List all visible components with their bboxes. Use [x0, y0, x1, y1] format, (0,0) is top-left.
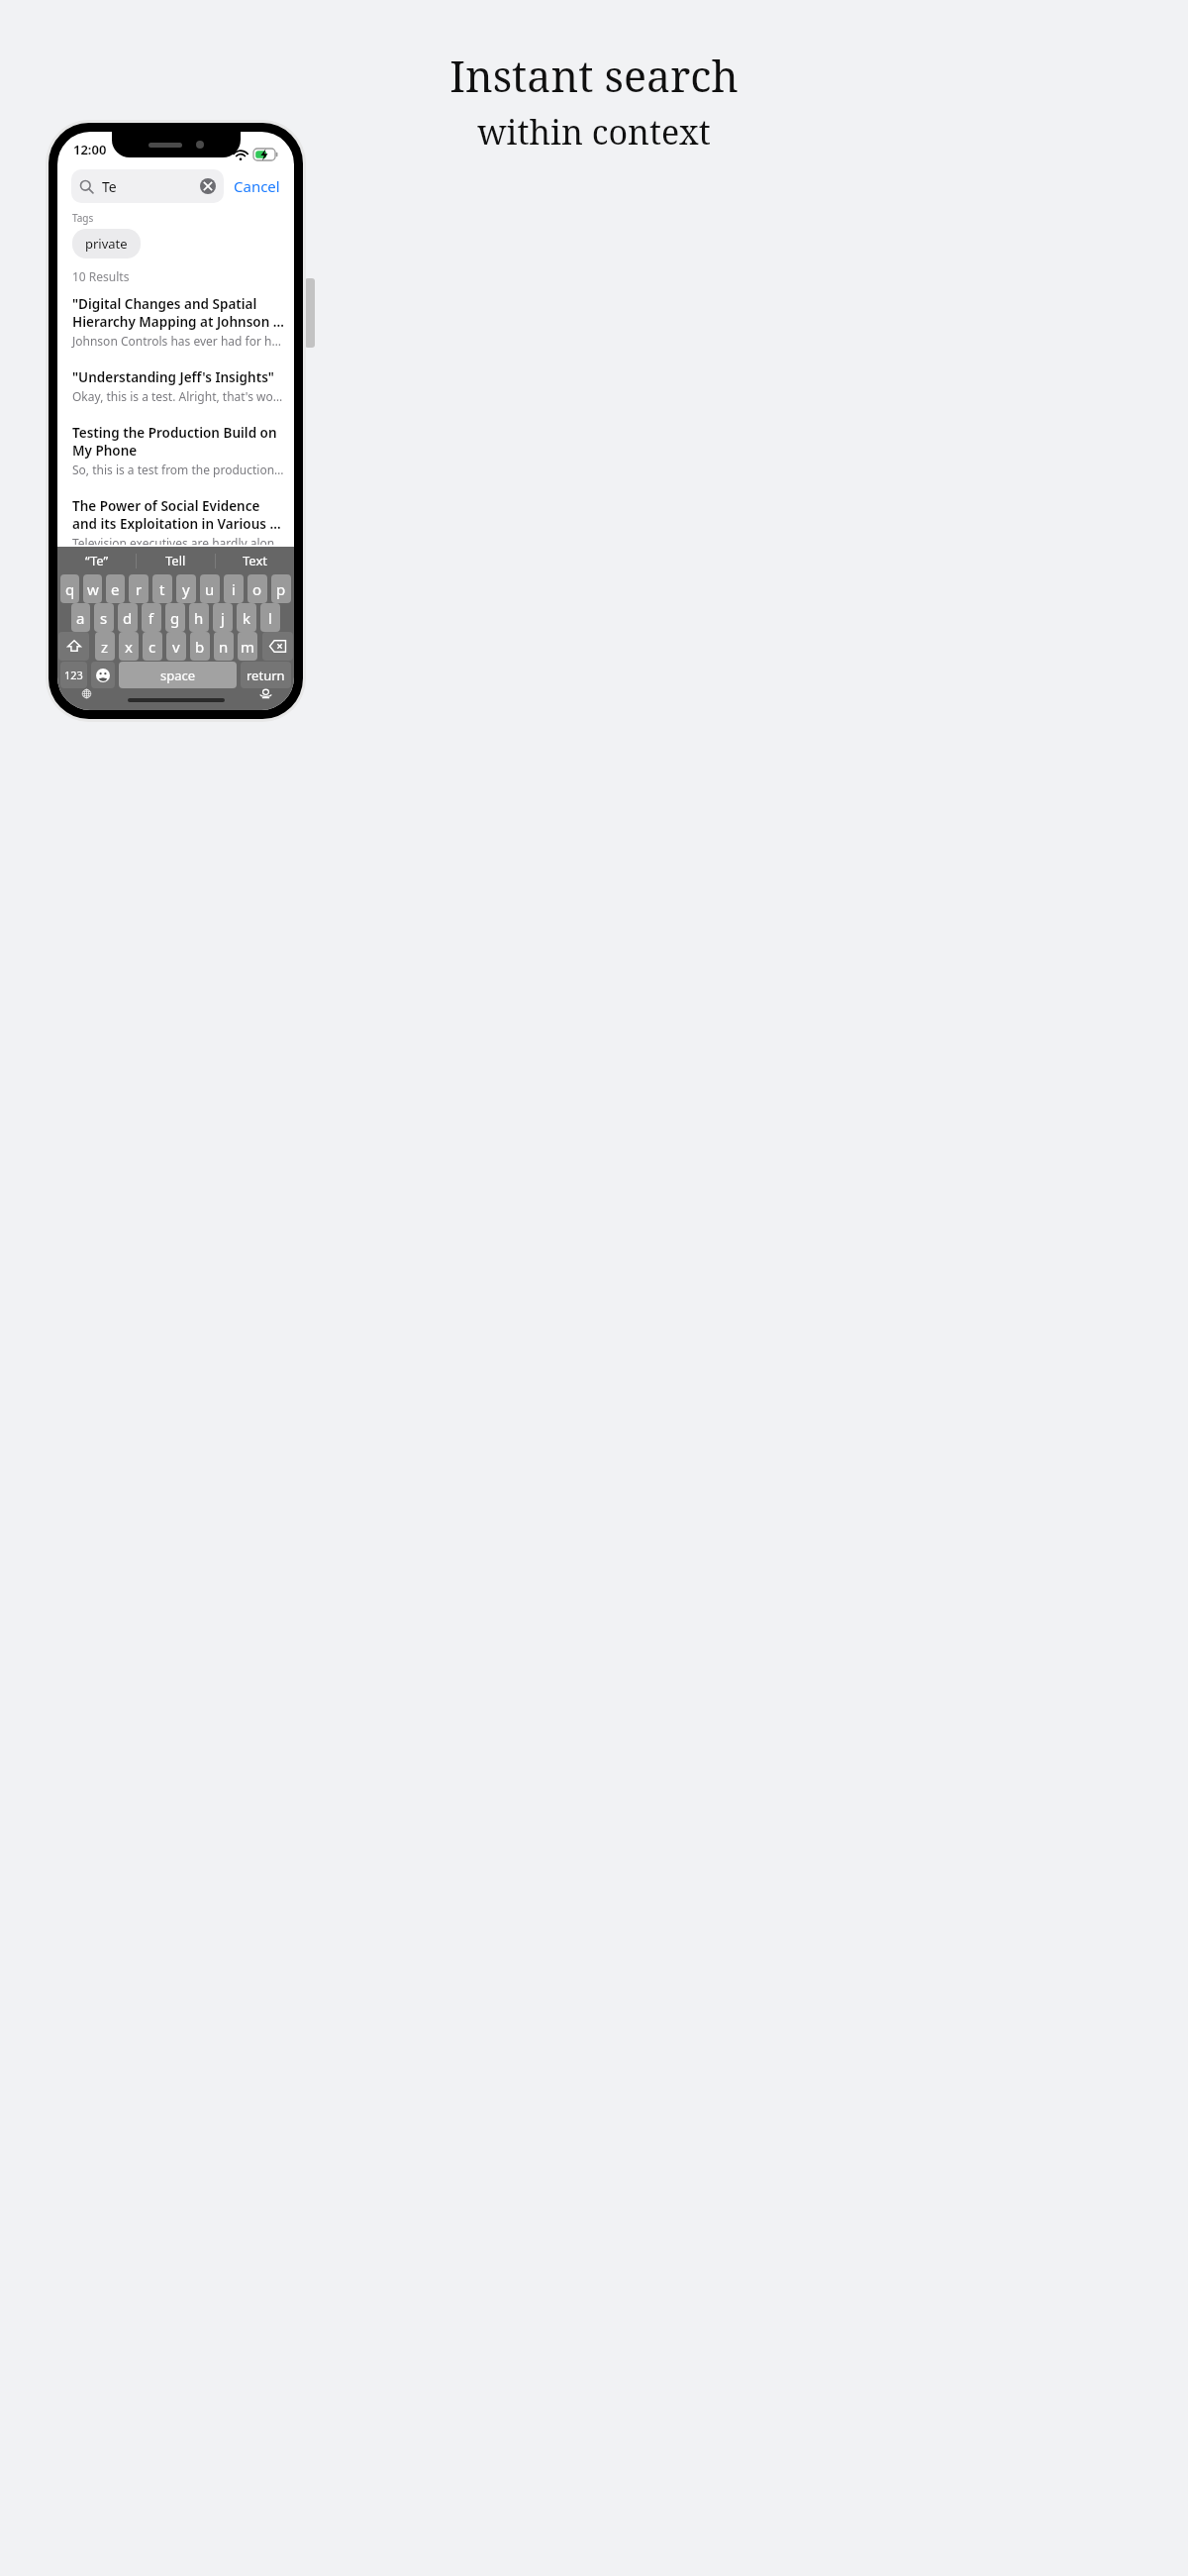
- staticText: z: [101, 637, 109, 657]
- staticText: a: [76, 608, 85, 628]
- button[interactable]: h: [189, 603, 209, 632]
- button[interactable]: s: [94, 603, 114, 632]
- staticText: within context: [477, 109, 711, 155]
- button[interactable]: “Te”: [57, 547, 136, 574]
- staticText: d: [123, 608, 133, 628]
- button[interactable]: k: [237, 603, 256, 632]
- staticText: So, this is a test from the production b…: [72, 462, 286, 477]
- button[interactable]: Clear text: [200, 178, 216, 194]
- staticText: w: [87, 579, 99, 599]
- button[interactable]: space: [119, 662, 237, 688]
- staticText: Te: [102, 177, 117, 196]
- button[interactable]: The Power of Social Evidence and its Exp…: [72, 495, 286, 547]
- button[interactable]: y: [176, 574, 196, 603]
- button[interactable]: Tell: [137, 547, 215, 574]
- staticText: 12:00: [73, 141, 107, 158]
- button[interactable]: Cancel: [224, 172, 282, 200]
- staticText: r: [136, 579, 143, 599]
- staticText: v: [172, 637, 180, 657]
- staticText: k: [243, 608, 251, 628]
- button[interactable]: "Digital Changes and Spatial Hierarchy M…: [72, 293, 286, 351]
- button[interactable]: l: [260, 603, 280, 632]
- staticText: Tags: [72, 211, 94, 225]
- button[interactable]: z: [95, 632, 115, 661]
- staticText: n: [219, 637, 229, 657]
- staticText: i: [232, 579, 236, 599]
- staticText: x: [125, 637, 133, 657]
- staticText: q: [65, 579, 75, 599]
- staticText: l: [268, 608, 272, 628]
- staticText: Tell: [165, 552, 186, 569]
- button[interactable]: Change keyboard language: [74, 689, 98, 698]
- button[interactable]: "Understanding Jeff's Insights": [72, 366, 286, 406]
- button[interactable]: Te: [71, 169, 224, 203]
- staticText: private: [85, 235, 128, 253]
- button[interactable]: w: [83, 574, 102, 603]
- staticText: Television executives are hardly alone i…: [72, 535, 286, 545]
- button[interactable]: p: [271, 574, 291, 603]
- staticText: The Power of Social Evidence and its Exp…: [72, 497, 286, 533]
- button[interactable]: o: [247, 574, 267, 603]
- button[interactable]: d: [118, 603, 138, 632]
- staticText: Text: [243, 552, 267, 569]
- button[interactable]: g: [165, 603, 185, 632]
- staticText: return: [247, 667, 285, 684]
- button[interactable]: b: [190, 632, 210, 661]
- staticText: t: [159, 579, 165, 599]
- button[interactable]: Shift: [58, 632, 89, 661]
- staticText: "Digital Changes and Spatial Hierarchy M…: [72, 295, 286, 331]
- staticText: space: [160, 667, 196, 684]
- staticText: Testing the Production Build on My Phone: [72, 424, 286, 460]
- button[interactable]: a: [71, 603, 90, 632]
- staticText: h: [194, 608, 204, 628]
- button[interactable]: private: [72, 229, 141, 258]
- button[interactable]: f: [142, 603, 161, 632]
- staticText: s: [100, 608, 108, 628]
- button[interactable]: r: [129, 574, 148, 603]
- staticText: "Understanding Jeff's Insights": [72, 368, 274, 386]
- staticText: Okay, this is a test. Alright, that's wo…: [72, 388, 286, 404]
- staticText: “Te”: [85, 552, 109, 569]
- button[interactable]: i: [224, 574, 244, 603]
- button[interactable]: n: [214, 632, 234, 661]
- staticText: p: [276, 579, 286, 599]
- staticText: Instant search: [449, 47, 739, 105]
- button[interactable]: Dictation: [253, 689, 277, 698]
- button[interactable]: return: [241, 662, 291, 688]
- button[interactable]: t: [152, 574, 172, 603]
- staticText: b: [195, 637, 205, 657]
- button[interactable]: c: [143, 632, 162, 661]
- staticText: c: [148, 637, 156, 657]
- button[interactable]: Testing the Production Build on My Phone: [72, 422, 286, 479]
- button[interactable]: q: [60, 574, 79, 603]
- staticText: Cancel: [234, 176, 280, 196]
- staticText: o: [252, 579, 262, 599]
- staticText: 123: [64, 668, 83, 682]
- button[interactable]: Backspace: [262, 632, 293, 661]
- button[interactable]: u: [200, 574, 220, 603]
- button[interactable]: Text: [216, 547, 294, 574]
- staticText: j: [221, 608, 225, 628]
- staticText: 10 Results: [72, 268, 130, 284]
- staticText: f: [148, 608, 154, 628]
- staticText: u: [205, 579, 215, 599]
- button[interactable]: m: [238, 632, 257, 661]
- staticText: m: [241, 637, 255, 657]
- staticText: e: [111, 579, 120, 599]
- button[interactable]: x: [119, 632, 139, 661]
- staticText: g: [170, 608, 180, 628]
- button[interactable]: e: [106, 574, 125, 603]
- button[interactable]: j: [213, 603, 233, 632]
- button[interactable]: 123: [60, 662, 87, 688]
- button[interactable]: Emoji: [91, 662, 115, 688]
- button[interactable]: v: [166, 632, 186, 661]
- staticText: y: [182, 579, 190, 599]
- staticText: Johnson Controls has ever had for hardwa…: [72, 333, 286, 349]
